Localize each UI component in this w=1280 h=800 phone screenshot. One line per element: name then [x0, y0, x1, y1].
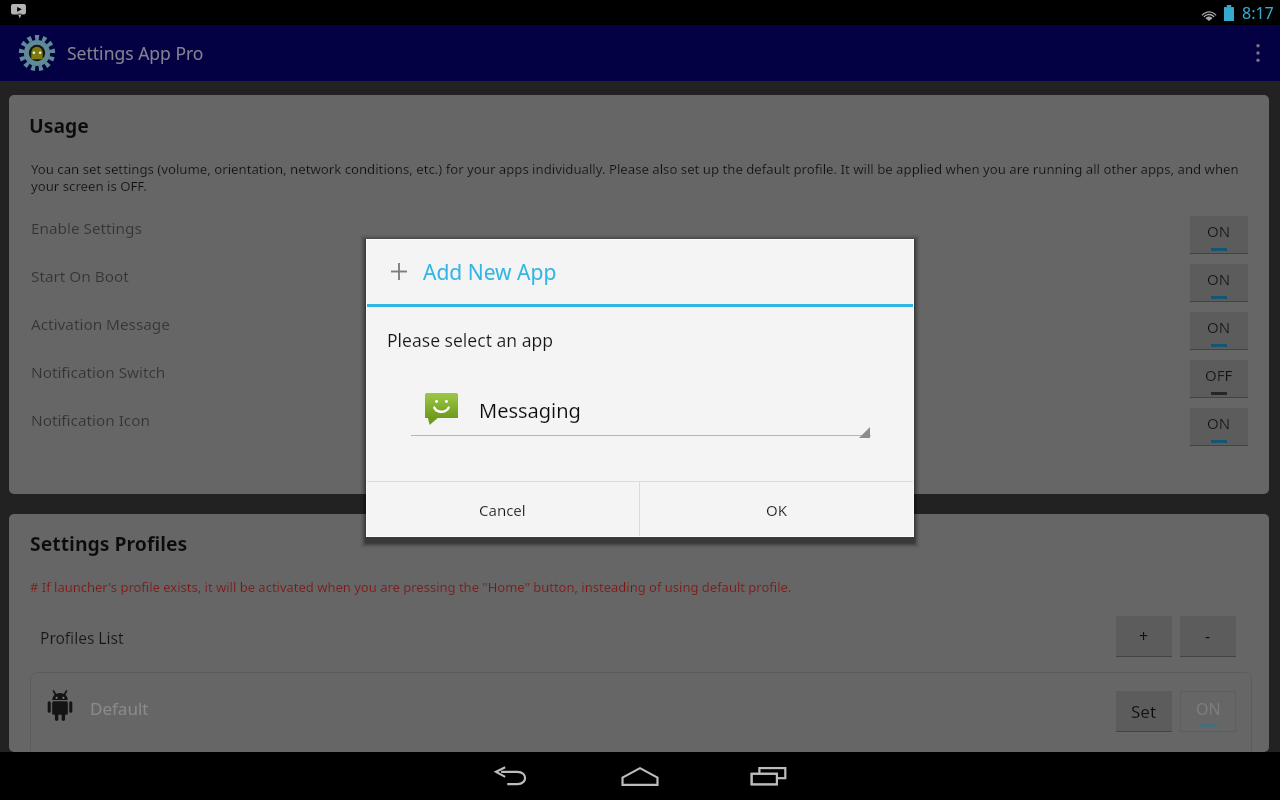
staticText: Enable Settings: [31, 218, 142, 239]
button[interactable]: ON: [1190, 216, 1248, 254]
button[interactable]: Notification Icon: [9, 396, 1269, 444]
button[interactable]: More options: [1236, 25, 1280, 81]
staticText: ON: [1207, 317, 1231, 337]
staticText: Messaging: [479, 397, 581, 424]
button[interactable]: Enable Settings: [9, 204, 1269, 252]
button[interactable]: +: [1116, 616, 1172, 657]
staticText: Please select an app: [387, 328, 554, 352]
staticText: Default: [90, 697, 149, 720]
staticText: Settings Profiles: [30, 530, 188, 556]
button[interactable]: Back: [474, 752, 550, 800]
staticText: ON: [1196, 698, 1221, 720]
staticText: ON: [1207, 221, 1231, 241]
button[interactable]: Activation Message: [9, 300, 1269, 348]
button[interactable]: Notification Switch: [9, 348, 1269, 396]
button[interactable]: Start On Boot: [9, 252, 1269, 300]
staticText: You can set settings (volume, orientatio…: [31, 160, 1246, 195]
staticText: ON: [1207, 413, 1231, 433]
staticText: -: [1205, 625, 1211, 647]
staticText: Set: [1131, 700, 1157, 723]
button[interactable]: ON: [1190, 312, 1248, 350]
button[interactable]: ON: [1190, 264, 1248, 302]
staticText: # If launcher's profile exists, it will …: [30, 578, 792, 596]
button[interactable]: OFF: [1190, 360, 1248, 398]
button[interactable]: Home: [602, 752, 678, 800]
staticText: Usage: [29, 112, 89, 138]
button[interactable]: Recent apps: [730, 752, 806, 800]
staticText: +: [1139, 625, 1149, 647]
staticText: Settings App Pro: [67, 41, 204, 65]
button[interactable]: Messaging: [411, 390, 871, 440]
button[interactable]: ON: [1190, 408, 1248, 446]
button[interactable]: Cancel: [366, 482, 639, 537]
staticText: OFF: [1205, 365, 1233, 385]
staticText: Start On Boot: [31, 266, 129, 287]
staticText: Notification Switch: [31, 362, 166, 383]
staticText: Activation Message: [31, 314, 170, 335]
button[interactable]: -: [1180, 616, 1236, 657]
staticText: Notification Icon: [31, 410, 150, 431]
button[interactable]: Set: [1116, 691, 1172, 732]
staticText: Cancel: [479, 500, 526, 520]
staticText: OK: [766, 500, 788, 520]
staticText: ON: [1207, 269, 1231, 289]
staticText: Profiles List: [40, 627, 124, 648]
button[interactable]: Default: [30, 672, 1252, 752]
staticText: 8:17: [1242, 2, 1274, 24]
button[interactable]: OK: [640, 482, 914, 537]
staticText: Add New App: [423, 258, 557, 287]
button[interactable]: ON: [1180, 691, 1236, 732]
